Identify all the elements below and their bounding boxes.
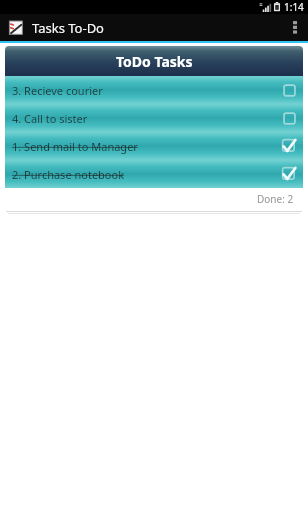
other: Mark complete [281, 110, 297, 126]
staticText: 3. Recieve courier [12, 83, 103, 98]
staticText: 1. Send mail to Manager [12, 139, 138, 154]
button[interactable]: 4. Call to sister [5, 104, 303, 132]
staticText: Done: 2 [257, 192, 294, 206]
button[interactable]: 2. Purchase notebook [5, 160, 303, 188]
staticText: 1:14 [284, 0, 304, 14]
button[interactable]: Tasks To-Do [6, 18, 104, 37]
button[interactable]: 1. Send mail to Manager [5, 132, 303, 160]
other: Mark complete [281, 82, 297, 98]
staticText: ToDo Tasks [116, 52, 193, 71]
staticText: 4. Call to sister [12, 111, 88, 126]
staticText: 2. Purchase notebook [12, 167, 125, 182]
staticText: Tasks To-Do [32, 19, 104, 37]
button[interactable]: 3. Recieve courier [5, 76, 303, 104]
other: Completed [281, 138, 297, 154]
button[interactable]: More options [282, 14, 308, 41]
other: Completed [281, 166, 297, 182]
